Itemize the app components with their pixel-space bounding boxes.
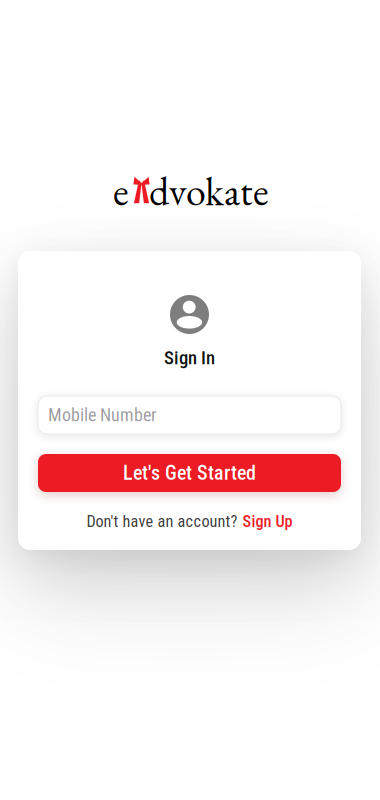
- staticText: Don't have an account?: [86, 512, 237, 531]
- button[interactable]: Sign Up: [242, 512, 292, 531]
- button[interactable]: Let's Get Started: [38, 454, 341, 492]
- staticText: dvokate: [149, 165, 269, 217]
- staticText: Let's Get Started: [123, 461, 256, 485]
- staticText: Mobile Number: [48, 404, 156, 426]
- staticText: Sign Up: [242, 512, 292, 531]
- staticText: Sign In: [164, 347, 215, 369]
- staticText: e: [113, 165, 129, 217]
